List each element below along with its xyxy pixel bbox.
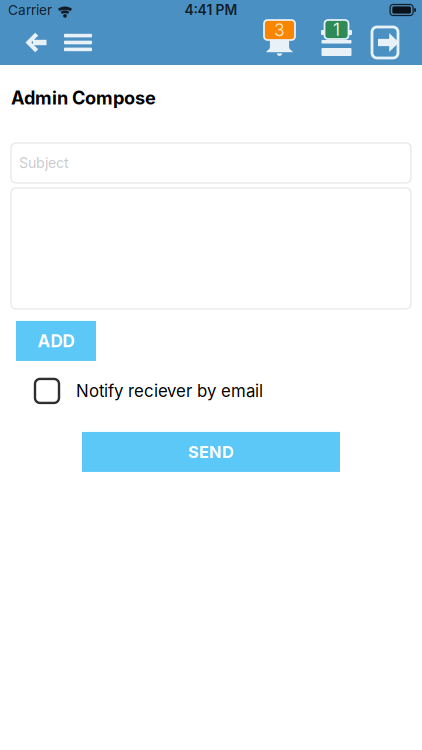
button[interactable]: Notifications [264, 20, 295, 65]
staticText: ADD [37, 331, 74, 351]
staticText: Admin Compose [11, 87, 156, 109]
staticText: Carrier [8, 2, 52, 18]
staticText: 4:41 PM [184, 2, 237, 18]
button[interactable]: Menu [56, 20, 100, 65]
button[interactable]: Notify reciever by email [35, 379, 422, 403]
staticText: 1 [333, 19, 340, 40]
staticText: 3 [274, 19, 285, 40]
staticText: Notify reciever by email [76, 381, 263, 401]
button[interactable]: ADD [16, 321, 96, 361]
button[interactable]: SEND [82, 432, 340, 472]
button[interactable]: Messages [321, 20, 352, 65]
button[interactable]: Back [16, 20, 56, 65]
staticText: Subject [19, 154, 69, 171]
button[interactable]: Sign out [372, 20, 400, 65]
staticText: SEND [188, 442, 234, 462]
